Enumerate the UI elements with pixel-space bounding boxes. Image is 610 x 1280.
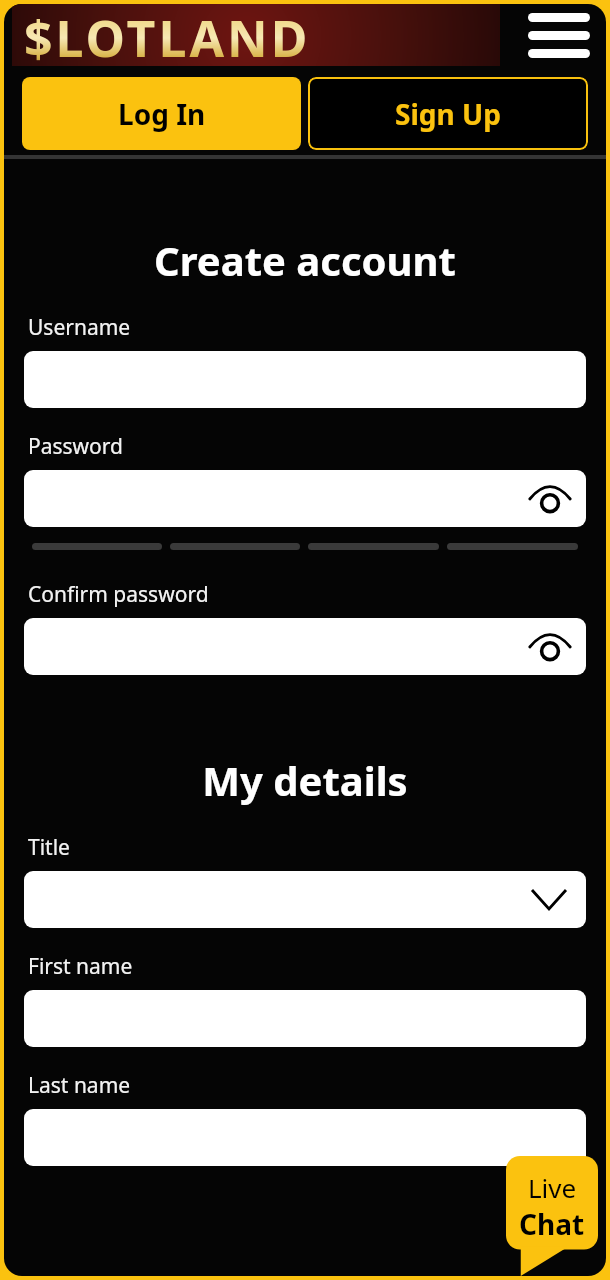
staticText: Create account	[4, 233, 606, 287]
staticText: Title	[28, 833, 70, 862]
staticText: Log In	[118, 95, 206, 133]
button[interactable]: Title	[24, 871, 586, 928]
button[interactable]: Live Chat	[506, 1156, 598, 1276]
staticText: Live	[528, 1170, 577, 1205]
staticText: $LOTLAND	[24, 4, 311, 66]
staticText: Sign Up	[395, 95, 501, 133]
button[interactable]: First name	[24, 990, 586, 1047]
staticText: First name	[28, 952, 133, 981]
button[interactable]: Last name	[24, 1109, 586, 1166]
button[interactable]: Username	[24, 351, 586, 408]
button[interactable]: Open title dropdown	[520, 871, 578, 928]
staticText: Confirm password	[28, 580, 209, 609]
button[interactable]: Slotland home	[4, 4, 606, 66]
staticText: Password	[28, 432, 123, 461]
button[interactable]: Show password	[522, 619, 578, 675]
button[interactable]: Menu	[528, 13, 590, 63]
staticText: Last name	[28, 1071, 131, 1100]
button[interactable]: Show password	[522, 471, 578, 527]
button[interactable]: Log In	[22, 77, 301, 150]
staticText: Chat	[519, 1205, 585, 1243]
button[interactable]: Password	[24, 470, 586, 527]
staticText: My details	[4, 753, 606, 807]
button[interactable]: Sign Up	[308, 77, 588, 150]
button[interactable]: Confirm password	[24, 618, 586, 675]
staticText: Username	[28, 313, 131, 342]
